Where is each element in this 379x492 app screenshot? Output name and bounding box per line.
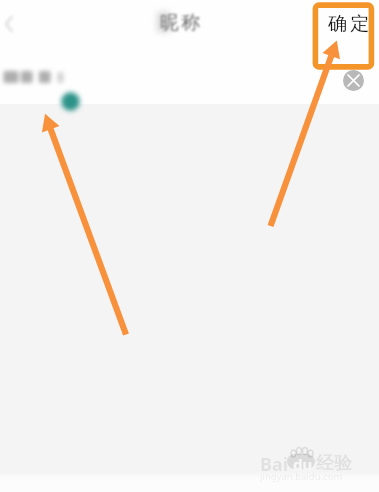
staticText: du bbox=[293, 454, 313, 474]
staticText: 确定 bbox=[328, 12, 373, 36]
staticText: Bai bbox=[260, 452, 289, 477]
button[interactable]: 确定 bbox=[328, 12, 373, 36]
staticText: jingyan.baidu.com bbox=[260, 470, 343, 483]
button[interactable]: Clear text bbox=[343, 70, 364, 91]
staticText: 经验 bbox=[316, 452, 352, 475]
button[interactable]: Back bbox=[0, 13, 22, 35]
staticText: 昵称 bbox=[160, 11, 203, 35]
